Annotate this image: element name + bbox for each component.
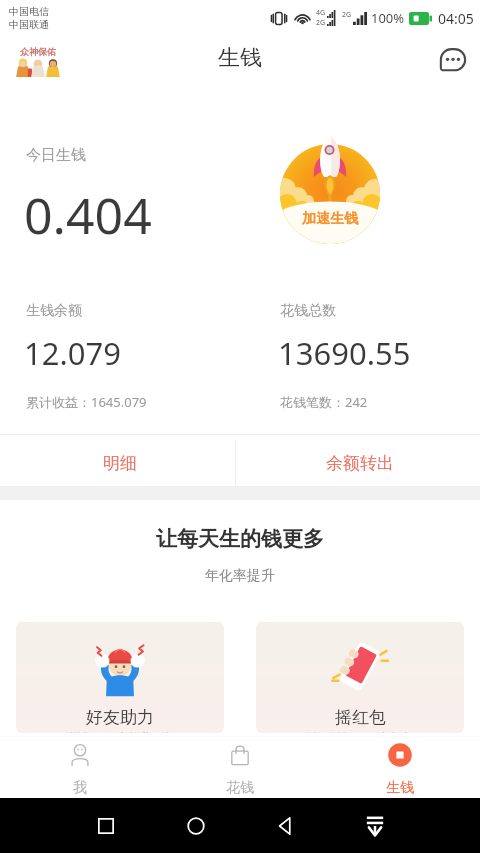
staticText: 众神保佑 — [20, 46, 56, 57]
staticText: 100% — [371, 9, 405, 27]
staticText: 生钱余额 — [26, 302, 82, 320]
staticText: 中国电信 — [9, 5, 49, 18]
staticText: 2G — [342, 10, 352, 20]
button[interactable]: 好友助力 — [16, 622, 224, 733]
staticText: 年化率提升 — [0, 567, 480, 585]
staticText: 邀请好友助力赚更多 — [66, 730, 174, 733]
button[interactable]: 明细 — [0, 438, 240, 489]
staticText: 12.079 — [24, 332, 121, 374]
staticText: 让每天生的钱更多 — [0, 526, 480, 552]
button[interactable]: 加速生钱 — [278, 136, 382, 248]
staticText: 余额转出 — [326, 453, 394, 474]
staticText: 生钱 — [386, 779, 414, 797]
button[interactable]: Home — [179, 809, 213, 843]
staticText: 摇一摇领取现金红包 — [306, 730, 414, 733]
staticText: 摇红包 — [335, 707, 386, 728]
staticText: 好友助力 — [86, 707, 154, 728]
button[interactable]: 我 — [0, 737, 160, 798]
staticText: 加速生钱 — [302, 210, 358, 228]
button[interactable]: 余额转出 — [240, 438, 480, 489]
staticText: 04:05 — [438, 9, 474, 28]
button[interactable]: Back — [268, 809, 302, 843]
staticText: 2G — [316, 18, 326, 28]
button[interactable]: 生钱 — [320, 737, 480, 798]
button[interactable]: Hide keyboard — [358, 809, 392, 843]
staticText: 中国联通 — [9, 18, 49, 31]
staticText: 生钱 — [218, 44, 262, 72]
staticText: 0.404 — [24, 181, 152, 249]
staticText: 累计收益：1645.079 — [26, 393, 147, 411]
staticText: 花钱总数 — [280, 302, 336, 320]
staticText: 今日生钱 — [26, 146, 86, 165]
staticText: 明细 — [103, 453, 137, 474]
staticText: 我 — [73, 779, 87, 797]
button[interactable]: Recents — [89, 809, 123, 843]
staticText: 花钱 — [226, 779, 254, 797]
staticText: 4G — [316, 8, 326, 18]
button[interactable]: Blessing — [8, 45, 68, 83]
staticText: 13690.55 — [278, 332, 411, 374]
button[interactable]: 摇红包 — [256, 622, 464, 733]
staticText: 花钱笔数：242 — [280, 393, 368, 411]
button[interactable]: 花钱 — [160, 737, 320, 798]
button[interactable]: Messages — [437, 44, 469, 76]
